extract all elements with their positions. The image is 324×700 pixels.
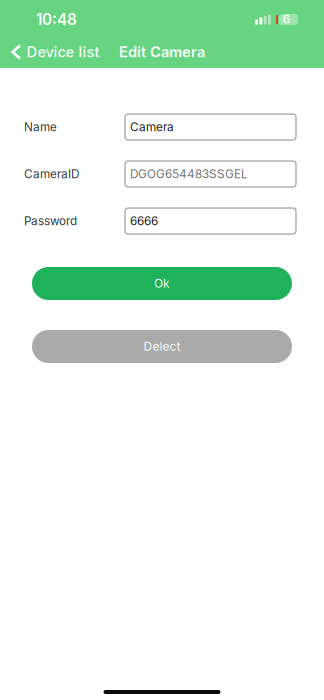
staticText: 6 (283, 13, 290, 26)
staticText: Name (24, 120, 57, 134)
staticText: 6666 (130, 214, 158, 228)
staticText: CameraID (24, 167, 79, 181)
button[interactable]: Device list (0, 38, 107, 66)
staticText: Edit Camera (119, 43, 205, 61)
staticText: Password (24, 214, 77, 228)
button[interactable]: Delect (32, 330, 292, 363)
staticText: DGOG654483SSGEL (130, 167, 248, 181)
staticText: 10:48 (36, 10, 77, 29)
staticText: Delect (143, 339, 180, 354)
button[interactable]: Ok (32, 267, 292, 300)
staticText: Device list (26, 43, 99, 61)
staticText: Ok (154, 276, 170, 291)
staticText: Camera (130, 120, 174, 134)
